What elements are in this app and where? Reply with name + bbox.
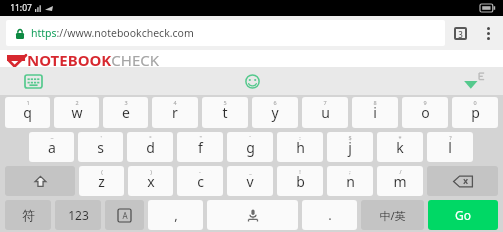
staticText: 符 <box>22 207 35 223</box>
button[interactable]: a <box>29 132 74 162</box>
button[interactable]: u <box>302 97 348 128</box>
staticText: https://www.notebookcheck.com <box>31 26 194 40</box>
button[interactable]: m <box>377 166 423 196</box>
staticText: s <box>97 138 104 157</box>
staticText: 0 <box>473 99 477 106</box>
staticText: x <box>147 172 155 191</box>
staticText: 1 <box>26 99 30 106</box>
staticText: u <box>321 103 330 122</box>
button[interactable]: Tabs <box>445 20 475 46</box>
button[interactable]: c <box>177 166 223 196</box>
staticText: ~ <box>50 134 54 141</box>
button[interactable]: y <box>252 97 298 128</box>
staticText: NOTEBOOKCHECK <box>27 50 160 67</box>
staticText: 4 <box>173 99 177 106</box>
button[interactable]: p <box>452 97 498 128</box>
staticText: o <box>421 103 430 122</box>
button[interactable]: Hide keyboard <box>458 67 490 95</box>
button[interactable]: Change language <box>105 200 144 230</box>
staticText: j <box>348 138 352 157</box>
button[interactable]: , <box>148 200 203 230</box>
staticText: k <box>396 138 404 157</box>
button[interactable]: s <box>78 132 123 162</box>
staticText: c <box>197 172 204 191</box>
button[interactable]: r <box>152 97 198 128</box>
staticText: 8 <box>373 99 377 106</box>
staticText: q <box>23 103 32 122</box>
staticText: 2 <box>75 99 79 106</box>
staticText: , <box>174 206 178 224</box>
button[interactable]: q <box>5 97 50 128</box>
staticText: 123 <box>68 207 89 223</box>
button[interactable]: More options <box>475 20 501 46</box>
button[interactable]: j <box>327 132 373 162</box>
staticText: 中/英 <box>379 208 406 223</box>
staticText: 9 <box>423 99 427 106</box>
staticText: ' <box>100 134 102 141</box>
staticText: m <box>393 172 407 191</box>
staticText: d <box>146 138 155 157</box>
button[interactable]: 123 <box>55 200 101 230</box>
staticText: b <box>296 172 305 191</box>
staticText: 3 <box>124 99 128 106</box>
button[interactable]: Emoji <box>238 67 266 95</box>
button[interactable]: Shift <box>5 166 75 196</box>
button[interactable]: g <box>227 132 273 162</box>
button[interactable]: d <box>127 132 173 162</box>
button[interactable]: 中/英 <box>361 200 424 230</box>
staticText: g <box>246 138 255 157</box>
staticText: ( <box>101 168 103 175</box>
button[interactable]: Keyboard layout <box>19 67 47 95</box>
button[interactable]: f <box>177 132 223 162</box>
button[interactable]: n <box>327 166 373 196</box>
staticText: f <box>198 138 203 157</box>
button[interactable]: Backspace <box>427 166 498 196</box>
button[interactable]: x <box>128 166 173 196</box>
staticText: 3 <box>458 29 463 38</box>
staticText: . <box>328 206 332 224</box>
button[interactable]: Space, voice input <box>207 200 298 230</box>
staticText: ; <box>349 168 351 175</box>
staticText: e <box>122 103 130 122</box>
button[interactable]: e <box>103 97 148 128</box>
staticText: : <box>299 134 301 141</box>
button[interactable]: k <box>377 132 423 162</box>
staticText: r <box>172 103 178 122</box>
button[interactable]: t <box>202 97 248 128</box>
button[interactable]: . <box>302 200 357 230</box>
button[interactable]: i <box>352 97 398 128</box>
staticText: l <box>448 138 452 157</box>
button[interactable]: 符 <box>5 200 51 230</box>
staticText: * <box>398 134 402 141</box>
staticText: ! <box>299 168 301 175</box>
button[interactable]: Go <box>428 200 498 230</box>
staticText: " <box>199 134 202 141</box>
button[interactable]: l <box>427 132 473 162</box>
staticText: y <box>271 103 279 122</box>
staticText: / <box>399 168 402 175</box>
button[interactable]: h <box>277 132 323 162</box>
button[interactable]: v <box>227 166 273 196</box>
staticText: _ <box>249 168 252 175</box>
button[interactable]: b <box>277 166 323 196</box>
staticText: A <box>122 210 128 221</box>
staticText: v <box>246 172 254 191</box>
staticText: ? <box>449 134 452 141</box>
staticText: 11:07 <box>10 2 32 14</box>
staticText: w <box>71 103 83 122</box>
staticText: $ <box>348 134 352 141</box>
staticText: p <box>471 103 480 122</box>
staticText: 7 <box>323 99 327 106</box>
staticText: Go <box>455 207 471 223</box>
button[interactable]: o <box>402 97 448 128</box>
staticText: z <box>98 172 105 191</box>
staticText: ` <box>249 134 251 141</box>
staticText: a <box>48 138 56 157</box>
staticText: i <box>373 103 377 122</box>
staticText: 6 <box>273 99 277 106</box>
button[interactable]: w <box>54 97 99 128</box>
button[interactable]: https://www.notebookcheck.com <box>6 20 445 46</box>
staticText: - <box>199 168 201 175</box>
button[interactable]: z <box>79 166 124 196</box>
staticText: n <box>346 172 355 191</box>
